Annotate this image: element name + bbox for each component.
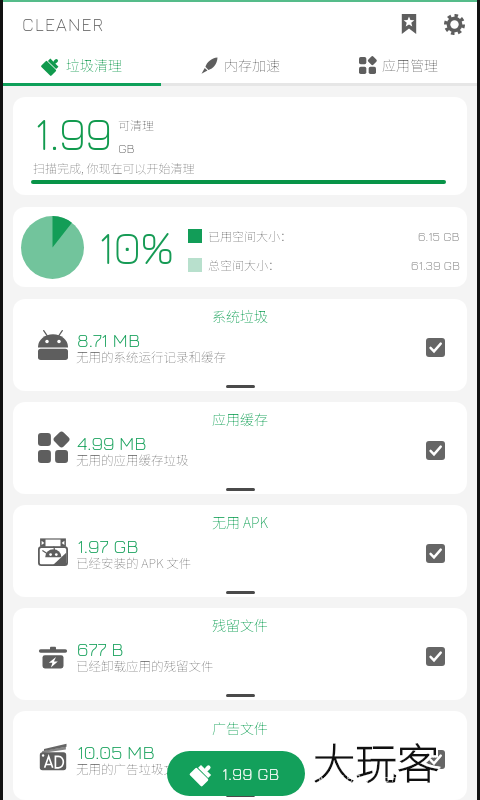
staticText: 无用的广告垃圾文件: [76, 759, 189, 777]
button[interactable]: 垃圾清理: [3, 46, 161, 83]
staticText: 大玩客: [315, 730, 442, 791]
staticText: 大玩客: [315, 732, 442, 793]
staticText: 大玩客: [313, 730, 440, 791]
staticText: 已经卸载应用的残留文件: [76, 656, 214, 674]
staticText: 大玩客: [313, 732, 440, 793]
staticText: 4.99 MB: [77, 431, 147, 455]
button[interactable]: Select: [426, 441, 445, 460]
staticText: 应用缓存: [212, 409, 268, 429]
button[interactable]: Select: [426, 647, 445, 666]
button[interactable]: Select: [426, 750, 445, 769]
staticText: 61.39 GB: [411, 257, 460, 272]
staticText: 扫描完成, 你现在可以开始清理: [33, 159, 195, 176]
staticText: 大玩客: [313, 728, 440, 789]
staticText: CLEANER: [22, 14, 105, 35]
staticText: 无用的应用缓存垃圾: [76, 450, 189, 468]
staticText: w w w . 1 8 9 d . c o m: [309, 772, 400, 784]
staticText: 已用空间大小：: [208, 227, 293, 244]
staticText: 大玩客: [313, 730, 440, 791]
button[interactable]: 应用缓存: [13, 402, 467, 494]
button[interactable]: 广告文件: [13, 711, 467, 800]
button[interactable]: Select: [426, 544, 445, 563]
staticText: 无用的系统运行记录和缓存: [76, 347, 227, 365]
button[interactable]: 无用 APK: [13, 505, 467, 597]
staticText: 广告文件: [212, 718, 268, 738]
staticText: 大玩客: [311, 732, 438, 793]
staticText: 1.97 GB: [77, 534, 139, 558]
staticText: 大玩客: [311, 730, 438, 791]
staticText: GB: [118, 140, 135, 155]
staticText: 8.71 MB: [77, 328, 140, 352]
staticText: 应用管理: [382, 55, 438, 75]
staticText: 6.15 GB: [418, 228, 460, 243]
staticText: 10%: [98, 220, 174, 274]
button[interactable]: 应用管理: [319, 46, 477, 83]
button[interactable]: 内存加速: [161, 46, 319, 83]
button[interactable]: Select: [426, 338, 445, 357]
button[interactable]: 残留文件: [13, 608, 467, 700]
staticText: 10.05 MB: [77, 740, 155, 764]
button[interactable]: 1.99 GB: [167, 751, 305, 796]
staticText: 大玩客: [315, 728, 442, 789]
staticText: 已经安装的 APK 文件: [76, 553, 192, 571]
staticText: 无用 APK: [212, 512, 268, 532]
button[interactable]: Settings: [431, 2, 477, 46]
staticText: 677 B: [77, 637, 124, 661]
staticText: 系统垃圾: [212, 306, 268, 326]
staticText: 1.99: [34, 106, 112, 160]
staticText: 大玩客: [311, 728, 438, 789]
staticText: 189: [303, 724, 384, 788]
button[interactable]: Bookmark: [387, 2, 431, 46]
staticText: 可清理: [118, 116, 155, 133]
staticText: 总空间大小：: [208, 256, 281, 273]
staticText: 1.99 GB: [222, 764, 280, 784]
staticText: 残留文件: [212, 615, 268, 635]
staticText: 内存加速: [224, 55, 280, 75]
button[interactable]: 系统垃圾: [13, 299, 467, 391]
staticText: 垃圾清理: [66, 55, 122, 75]
